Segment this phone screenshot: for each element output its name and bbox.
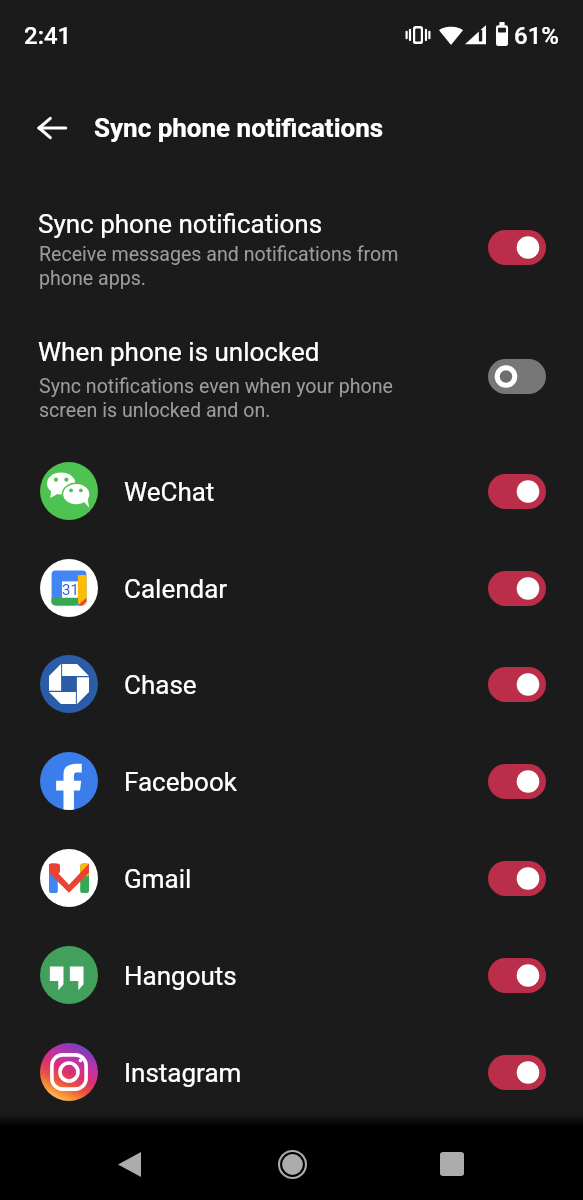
button[interactable] (0, 198, 583, 308)
button[interactable]: Recent apps (422, 1134, 482, 1194)
button[interactable]: 31 (0, 540, 583, 636)
button[interactable]: Gmail (0, 830, 583, 926)
button[interactable]: On (488, 571, 546, 606)
button[interactable]: Chase (0, 636, 583, 732)
staticText: Instagram (124, 1058, 242, 1088)
staticText: 31 (62, 581, 79, 599)
button[interactable]: Hangouts (0, 927, 583, 1023)
button[interactable]: Home (262, 1134, 322, 1194)
staticText: Sync phone notifications (94, 113, 384, 143)
button[interactable]: WeChat (0, 443, 583, 539)
button[interactable]: Navigate up (24, 100, 80, 156)
button[interactable]: Facebook (0, 733, 583, 829)
button[interactable]: On (488, 667, 546, 702)
button[interactable]: Off (488, 359, 546, 394)
button[interactable]: On (488, 861, 546, 896)
button[interactable]: Instagram (0, 1024, 583, 1120)
button[interactable]: On (488, 764, 546, 799)
staticText: Receive messages and notifications from … (39, 243, 399, 290)
staticText: Hangouts (124, 961, 237, 991)
button[interactable] (0, 325, 583, 435)
staticText: 2:41 (24, 22, 72, 50)
staticText: WeChat (124, 477, 215, 507)
staticText: 61% (514, 22, 559, 50)
staticText: Facebook (124, 767, 237, 797)
button[interactable]: On (488, 474, 546, 509)
button[interactable]: On (488, 230, 546, 265)
staticText: Calendar (124, 574, 228, 604)
button[interactable]: On (488, 1055, 546, 1090)
button[interactable]: Back (99, 1134, 159, 1194)
staticText: Sync notifications even when your phone … (39, 375, 393, 422)
staticText: When phone is unlocked (38, 337, 320, 367)
button[interactable]: On (488, 958, 546, 993)
staticText: Gmail (124, 864, 192, 894)
staticText: Sync phone notifications (38, 209, 323, 239)
staticText: Chase (124, 670, 197, 700)
